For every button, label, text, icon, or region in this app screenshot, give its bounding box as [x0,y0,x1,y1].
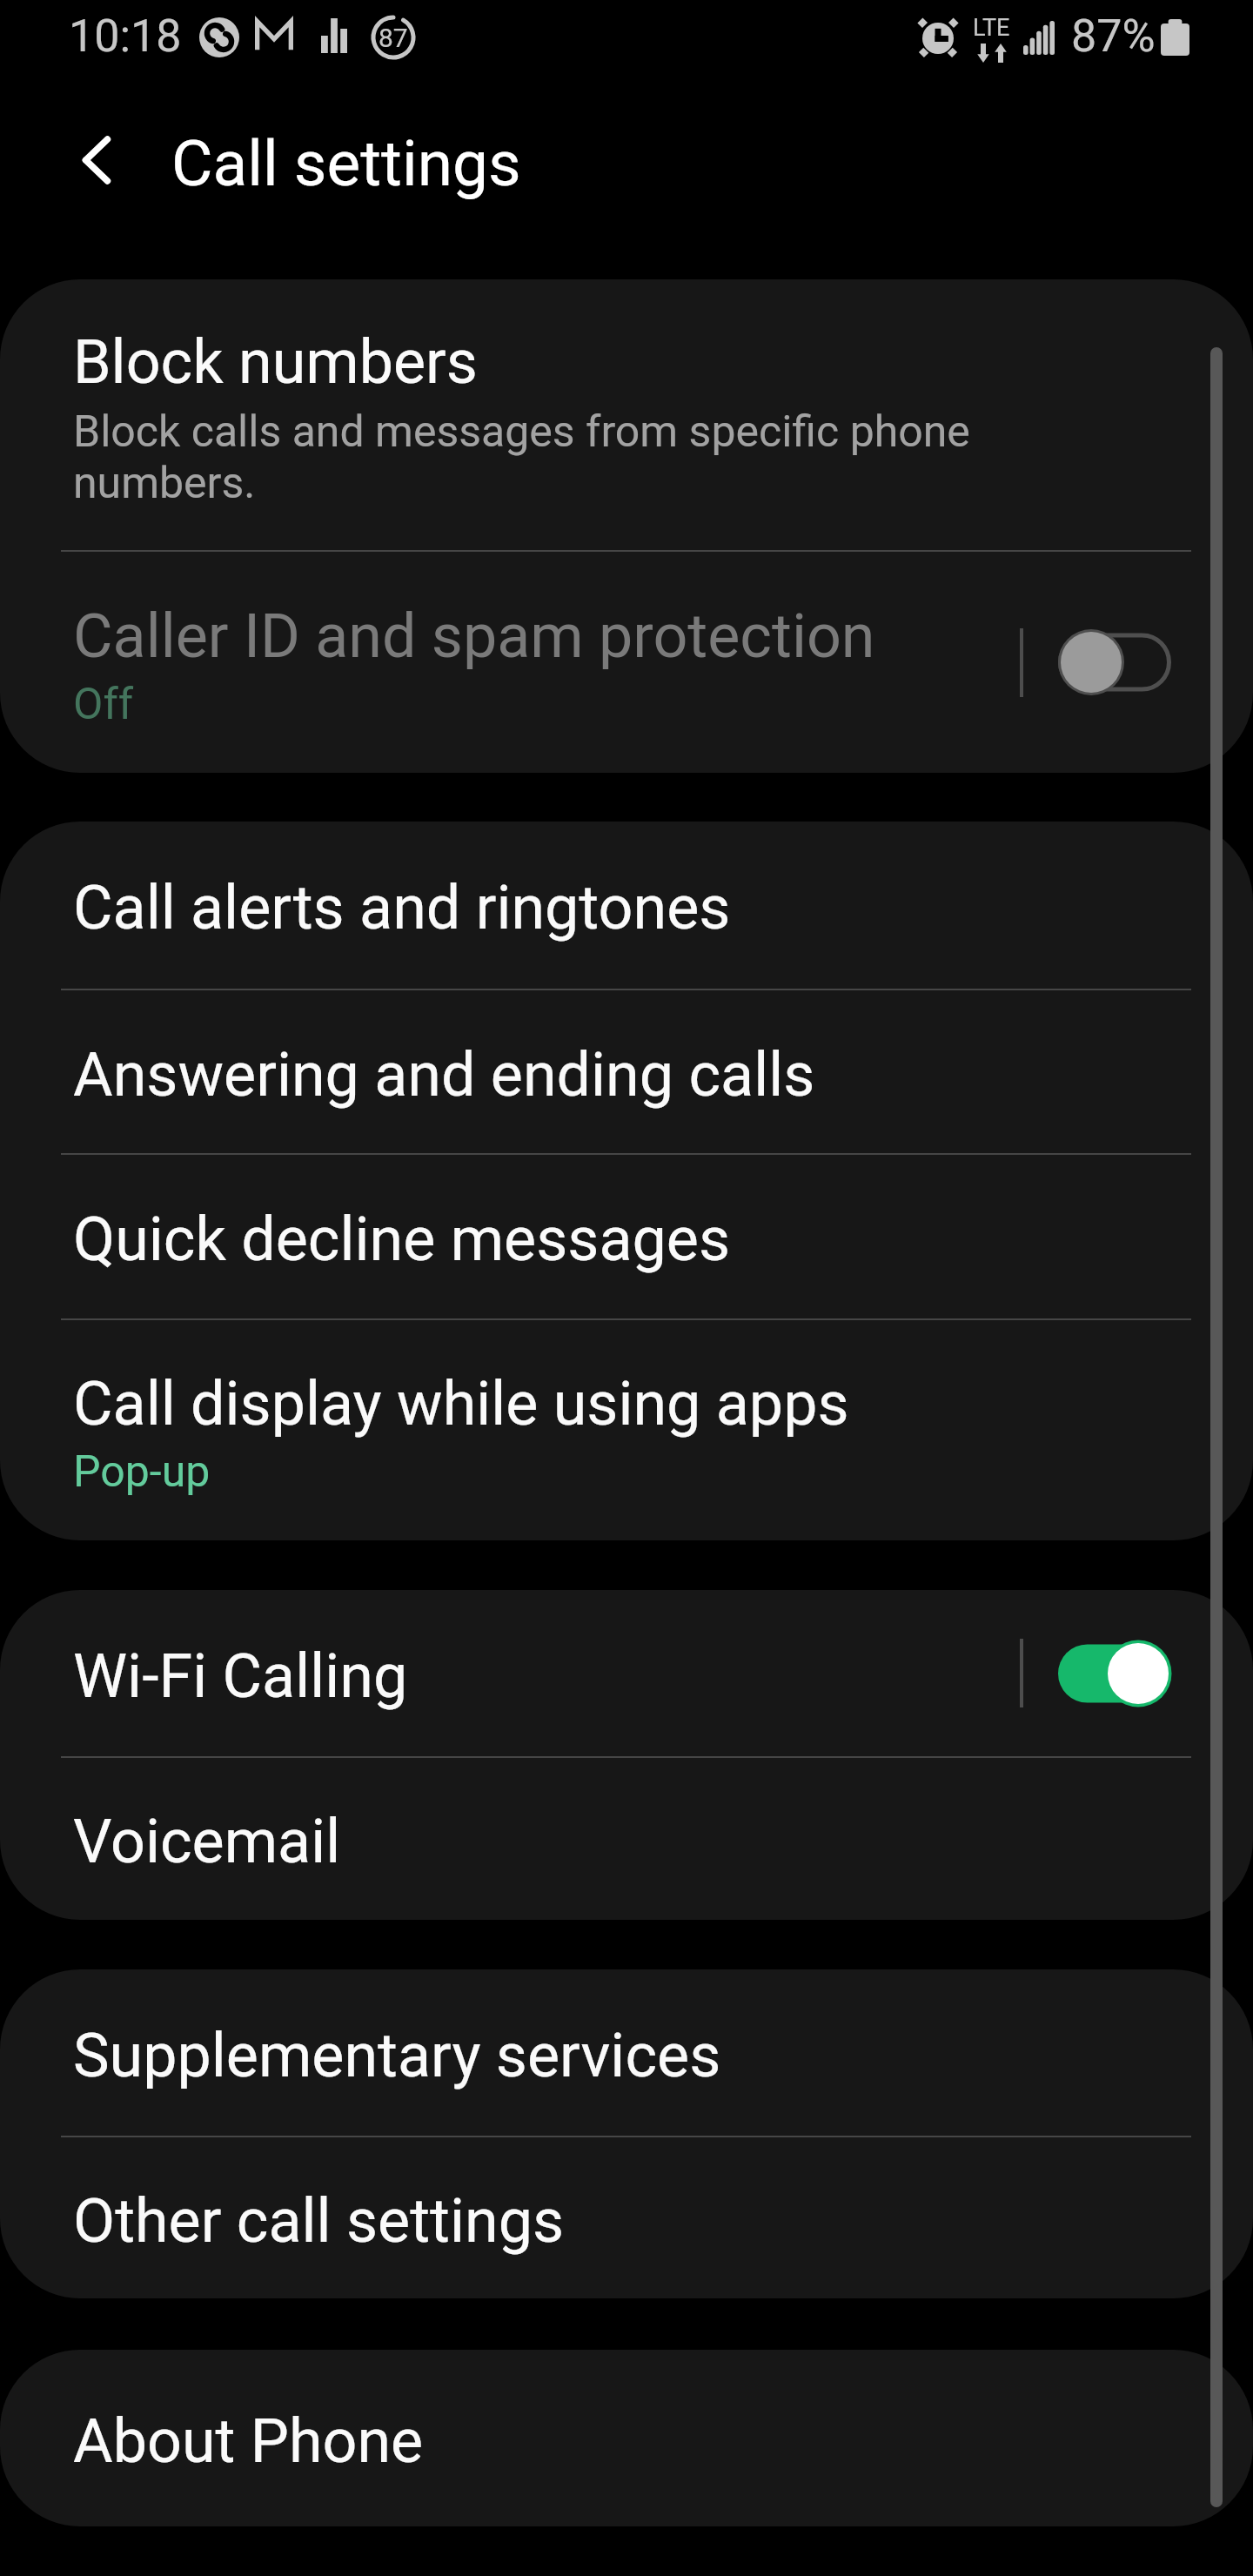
button[interactable]: About Phone [0,2350,1253,2526]
staticText: Wi-Fi Calling [73,1640,408,1712]
staticText: 87% [1071,10,1156,63]
button[interactable]: Other call settings [0,2137,1253,2298]
button[interactable]: Block numbers [0,279,1253,550]
staticText: Caller ID and spam protection [73,600,875,672]
button[interactable]: Switch on [1058,1640,1171,1707]
staticText: Off [73,679,134,730]
staticText: Block calls and messages from specific p… [73,406,1001,508]
staticText: Other call settings [73,2185,565,2257]
button[interactable]: Call display while using apps [0,1320,1253,1540]
button[interactable]: Caller ID and spam protection [0,552,1253,773]
staticText: Answering and ending calls [73,1039,815,1110]
staticText: 10:18 [69,10,182,63]
button[interactable]: Quick decline messages [0,1155,1253,1318]
staticText: Call alerts and ringtones [73,872,731,943]
staticText: Voicemail [73,1806,341,1877]
staticText: Quick decline messages [73,1204,731,1275]
button[interactable]: Wi-Fi Calling [0,1590,1253,1756]
staticText: About Phone [73,2405,424,2477]
button[interactable]: Answering and ending calls [0,990,1253,1153]
staticText: 87 [379,23,408,53]
button[interactable]: Voicemail [0,1758,1253,1920]
staticText: Call settings [171,126,521,201]
staticText: Block numbers [73,326,478,398]
button[interactable]: Switch off [1058,628,1171,696]
staticText: LTE [973,14,1010,42]
staticText: Call display while using apps [73,1368,849,1439]
staticText: Supplementary services [73,2020,721,2091]
button[interactable]: Supplementary services [0,1969,1253,2136]
button[interactable]: Navigate up [49,113,143,207]
button[interactable]: Call alerts and ringtones [0,822,1253,989]
staticText: Pop-up [73,1446,211,1498]
